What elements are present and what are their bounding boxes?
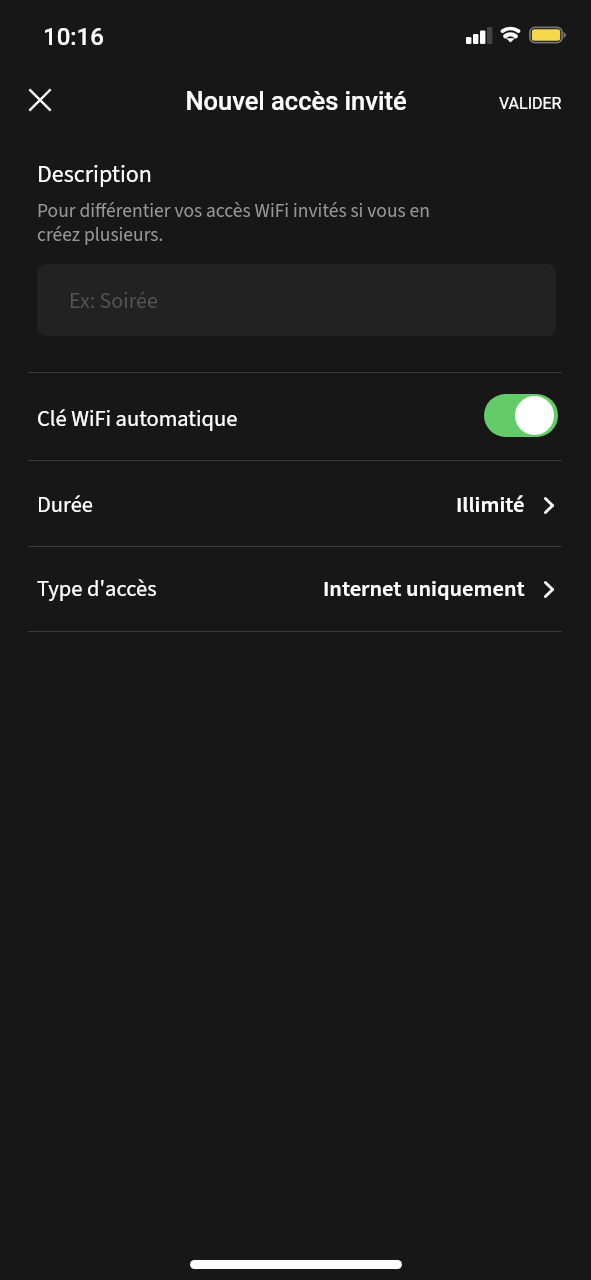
button[interactable]: Type d'accès — [0, 546, 591, 631]
staticText: Pour différentier vos accès WiFi invités… — [37, 197, 437, 249]
button[interactable]: VALIDER — [483, 82, 578, 125]
staticText: Type d'accès — [37, 573, 157, 605]
staticText: Nouvel accès invité — [185, 86, 407, 116]
button[interactable]: Ex: Soirée — [37, 264, 556, 336]
button[interactable]: Durée — [0, 462, 591, 548]
staticText: Internet uniquement — [323, 573, 525, 605]
staticText: Illimité — [456, 489, 525, 521]
staticText: 10:16 — [43, 23, 104, 51]
staticText: Clé WiFi automatique — [37, 403, 238, 435]
button[interactable]: Clé WiFi automatique — [0, 375, 591, 462]
staticText: Ex: Soirée — [69, 285, 158, 316]
button[interactable]: Fermer — [18, 78, 62, 122]
staticText: VALIDER — [499, 94, 562, 113]
staticText: Description — [37, 157, 152, 191]
staticText: Durée — [37, 489, 93, 521]
